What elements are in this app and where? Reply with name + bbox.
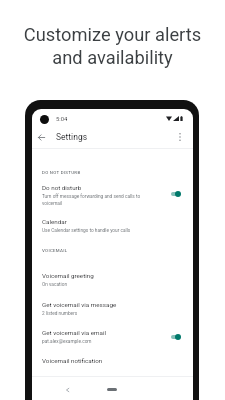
button[interactable]: Back [34,130,49,145]
staticText: DO NOT DISTURB [42,170,81,175]
button[interactable]: Back [61,384,73,396]
staticText: Customize your alerts and availability [0,24,225,68]
button[interactable]: Get voicemail via message [32,298,193,318]
staticText: pat.alex@example.com [42,339,92,345]
staticText: Voicemail greeting [42,272,94,279]
staticText: voicemail [42,201,63,207]
button[interactable]: Do not disturb [32,181,193,207]
button[interactable]: More options [172,129,187,144]
staticText: Settings [56,132,88,142]
button[interactable]: Voicemail notification [32,354,193,367]
staticText: VOICEMAIL [42,248,68,253]
staticText: 5:04 [56,116,68,123]
button[interactable]: Calendar [32,215,193,235]
button[interactable]: Voicemail greeting [32,269,193,289]
staticText: Voicemail notification [42,357,103,364]
staticText: Use Calendar settings to handle your cal… [42,228,131,234]
staticText: On vacation [42,282,68,288]
staticText: Calendar [42,218,67,225]
staticText: Turn off message forwarding and send cal… [42,194,141,200]
staticText: Get voicemail via message [42,301,117,308]
staticText: Do not disturb [42,184,82,191]
staticText: Get voicemail via email [42,329,107,336]
button[interactable]: Home [102,383,122,395]
staticText: 2 listed numbers [42,311,78,317]
button[interactable]: Get voicemail via email [32,326,193,346]
